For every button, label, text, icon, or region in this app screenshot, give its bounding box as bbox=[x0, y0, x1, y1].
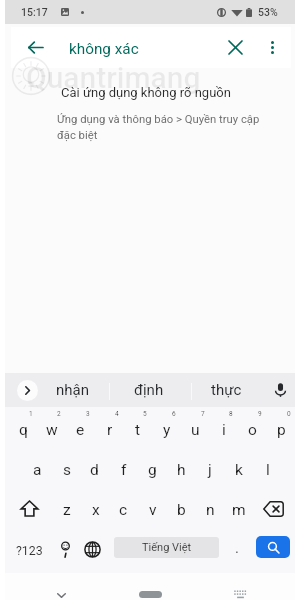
staticText: j bbox=[208, 461, 212, 479]
button[interactable]: 5 bbox=[123, 407, 152, 448]
staticText: k bbox=[235, 461, 243, 479]
button[interactable]: Search bbox=[256, 536, 290, 558]
staticText: 1 bbox=[29, 410, 33, 418]
staticText: p bbox=[277, 421, 286, 439]
button[interactable]: 1 bbox=[9, 407, 38, 448]
button[interactable]: g bbox=[138, 448, 167, 489]
staticText: định bbox=[134, 381, 164, 399]
button[interactable]: 0 bbox=[267, 407, 296, 448]
button[interactable]: More options bbox=[257, 27, 287, 68]
staticText: r bbox=[107, 421, 113, 439]
button[interactable]: m bbox=[224, 488, 253, 529]
button[interactable]: 8 bbox=[209, 407, 238, 448]
staticText: v bbox=[149, 501, 157, 519]
staticText: 2 bbox=[57, 410, 61, 418]
staticText: s bbox=[63, 461, 71, 479]
button[interactable]: h bbox=[167, 448, 196, 489]
staticText: w bbox=[46, 421, 58, 439]
button[interactable]: thực bbox=[196, 373, 256, 407]
staticText: g bbox=[148, 461, 157, 479]
button[interactable]: định bbox=[119, 373, 179, 407]
staticText: nhận bbox=[56, 381, 89, 399]
button[interactable]: . bbox=[223, 529, 251, 570]
button[interactable]: ?123 bbox=[9, 529, 50, 570]
staticText: 4 bbox=[115, 410, 119, 418]
staticText: ?123 bbox=[16, 543, 43, 558]
staticText: 6 bbox=[172, 410, 176, 418]
button[interactable]: k bbox=[224, 448, 253, 489]
button[interactable]: Backspace bbox=[253, 488, 294, 529]
staticText: 5 bbox=[143, 410, 147, 418]
staticText: z bbox=[63, 501, 71, 519]
staticText: 3 bbox=[86, 410, 90, 418]
button[interactable]: Voice input bbox=[265, 373, 295, 407]
button[interactable]: 6 bbox=[152, 407, 181, 448]
staticText: 53% bbox=[258, 6, 278, 18]
staticText: a bbox=[33, 461, 42, 479]
button[interactable]: 2 bbox=[37, 407, 66, 448]
staticText: l bbox=[266, 461, 270, 479]
button[interactable]: j bbox=[195, 448, 224, 489]
button[interactable]: l bbox=[253, 448, 282, 489]
button[interactable]: a bbox=[23, 448, 52, 489]
button[interactable]: b bbox=[167, 488, 196, 529]
button[interactable]: Navigate up bbox=[17, 27, 53, 68]
button[interactable]: 4 bbox=[95, 407, 124, 448]
button[interactable]: f bbox=[109, 448, 138, 489]
button[interactable]: n bbox=[196, 488, 225, 529]
staticText: 0 bbox=[287, 410, 291, 418]
staticText: 15:17 bbox=[21, 6, 48, 18]
staticText: t bbox=[135, 421, 141, 439]
staticText: f bbox=[121, 461, 127, 479]
staticText: o bbox=[248, 421, 257, 439]
staticText: y bbox=[163, 421, 171, 439]
staticText: h bbox=[177, 461, 186, 479]
button[interactable]: z bbox=[52, 488, 81, 529]
staticText: e bbox=[76, 421, 85, 439]
staticText: b bbox=[177, 501, 186, 519]
staticText: Cài ứng dụng không rõ nguồn bbox=[61, 85, 231, 100]
button[interactable]: s bbox=[52, 448, 81, 489]
button[interactable]: 9 bbox=[238, 407, 267, 448]
button[interactable]: x bbox=[81, 488, 110, 529]
staticText: thực bbox=[211, 381, 242, 399]
staticText: không xác bbox=[69, 40, 139, 58]
staticText: x bbox=[92, 501, 100, 519]
button[interactable]: Shift bbox=[9, 488, 50, 529]
staticText: 9 bbox=[258, 410, 262, 418]
button[interactable]: Back bbox=[40, 573, 82, 600]
staticText: đặc biệt bbox=[57, 129, 98, 142]
button[interactable]: c bbox=[109, 488, 138, 529]
button[interactable]: Tiếng Việt bbox=[114, 537, 219, 558]
staticText: c bbox=[119, 501, 128, 519]
button[interactable]: 3 bbox=[66, 407, 95, 448]
button[interactable]: Emoji bbox=[50, 529, 80, 570]
staticText: m bbox=[232, 501, 246, 519]
staticText: Quantrimang bbox=[26, 60, 201, 95]
staticText: Tiếng Việt bbox=[142, 541, 192, 554]
staticText: . bbox=[235, 539, 239, 557]
button[interactable]: Clear search bbox=[217, 27, 253, 68]
button[interactable]: Hide keyboard bbox=[219, 573, 261, 600]
button[interactable]: 7 bbox=[181, 407, 210, 448]
staticText: 7 bbox=[201, 410, 205, 418]
staticText: n bbox=[206, 501, 215, 519]
staticText: 8 bbox=[229, 410, 233, 418]
staticText: u bbox=[191, 421, 200, 439]
button[interactable]: v bbox=[138, 488, 167, 529]
staticText: Ứng dụng và thông báo > Quyền truy cập bbox=[57, 113, 260, 126]
staticText: d bbox=[90, 461, 99, 479]
button[interactable]: More suggestions bbox=[12, 373, 42, 407]
staticText: i bbox=[222, 421, 226, 439]
button[interactable]: nhận bbox=[42, 373, 102, 407]
button[interactable]: Home bbox=[129, 573, 171, 600]
button[interactable]: Change keyboard language bbox=[77, 529, 107, 570]
staticText: q bbox=[19, 421, 28, 439]
button[interactable]: d bbox=[80, 448, 109, 489]
